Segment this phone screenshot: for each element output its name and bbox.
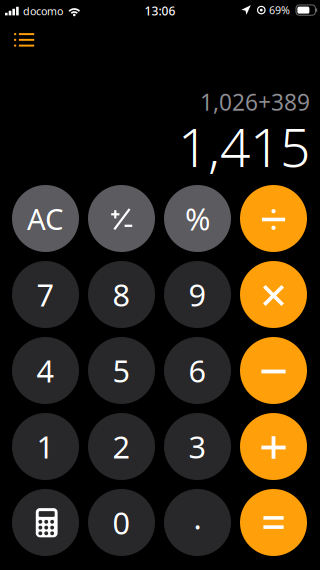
button[interactable]: 9	[164, 261, 231, 328]
staticText: 13:06	[144, 3, 175, 19]
button[interactable]: %	[164, 185, 231, 252]
button[interactable]: 1	[12, 413, 79, 480]
staticText: 3	[188, 426, 206, 467]
staticText: 69%	[269, 3, 290, 17]
staticText: 1	[36, 426, 54, 467]
staticText: 7	[36, 274, 54, 315]
button[interactable]: Equals	[240, 489, 307, 556]
button[interactable]: Multiply	[240, 261, 307, 328]
button[interactable]: 8	[88, 261, 155, 328]
button[interactable]: History	[0, 26, 46, 54]
staticText: %	[185, 198, 210, 239]
staticText: 1,415	[178, 111, 310, 182]
button[interactable]: 6	[164, 337, 231, 404]
staticText: AC	[27, 199, 64, 238]
button[interactable]: Plus Minus	[88, 185, 155, 252]
button[interactable]: 2	[88, 413, 155, 480]
staticText: docomo	[23, 4, 63, 18]
button[interactable]: Add	[240, 413, 307, 480]
button[interactable]: .	[164, 489, 231, 556]
button[interactable]: 3	[164, 413, 231, 480]
staticText: 6	[188, 350, 206, 391]
staticText: .	[193, 497, 201, 538]
staticText: 9	[188, 274, 206, 315]
button[interactable]: 7	[12, 261, 79, 328]
staticText: 2	[112, 426, 130, 467]
button[interactable]: AC	[12, 185, 79, 252]
staticText: 5	[112, 350, 130, 391]
button[interactable]: Subtract	[240, 337, 307, 404]
button[interactable]: Calculator	[12, 489, 79, 556]
button[interactable]: 4	[12, 337, 79, 404]
staticText: 1,026+389	[200, 87, 310, 117]
staticText: 4	[36, 350, 54, 391]
button[interactable]: 0	[88, 489, 155, 556]
staticText: 8	[112, 274, 130, 315]
staticText: 0	[112, 502, 130, 543]
button[interactable]: 5	[88, 337, 155, 404]
button[interactable]: Divide	[240, 185, 307, 252]
